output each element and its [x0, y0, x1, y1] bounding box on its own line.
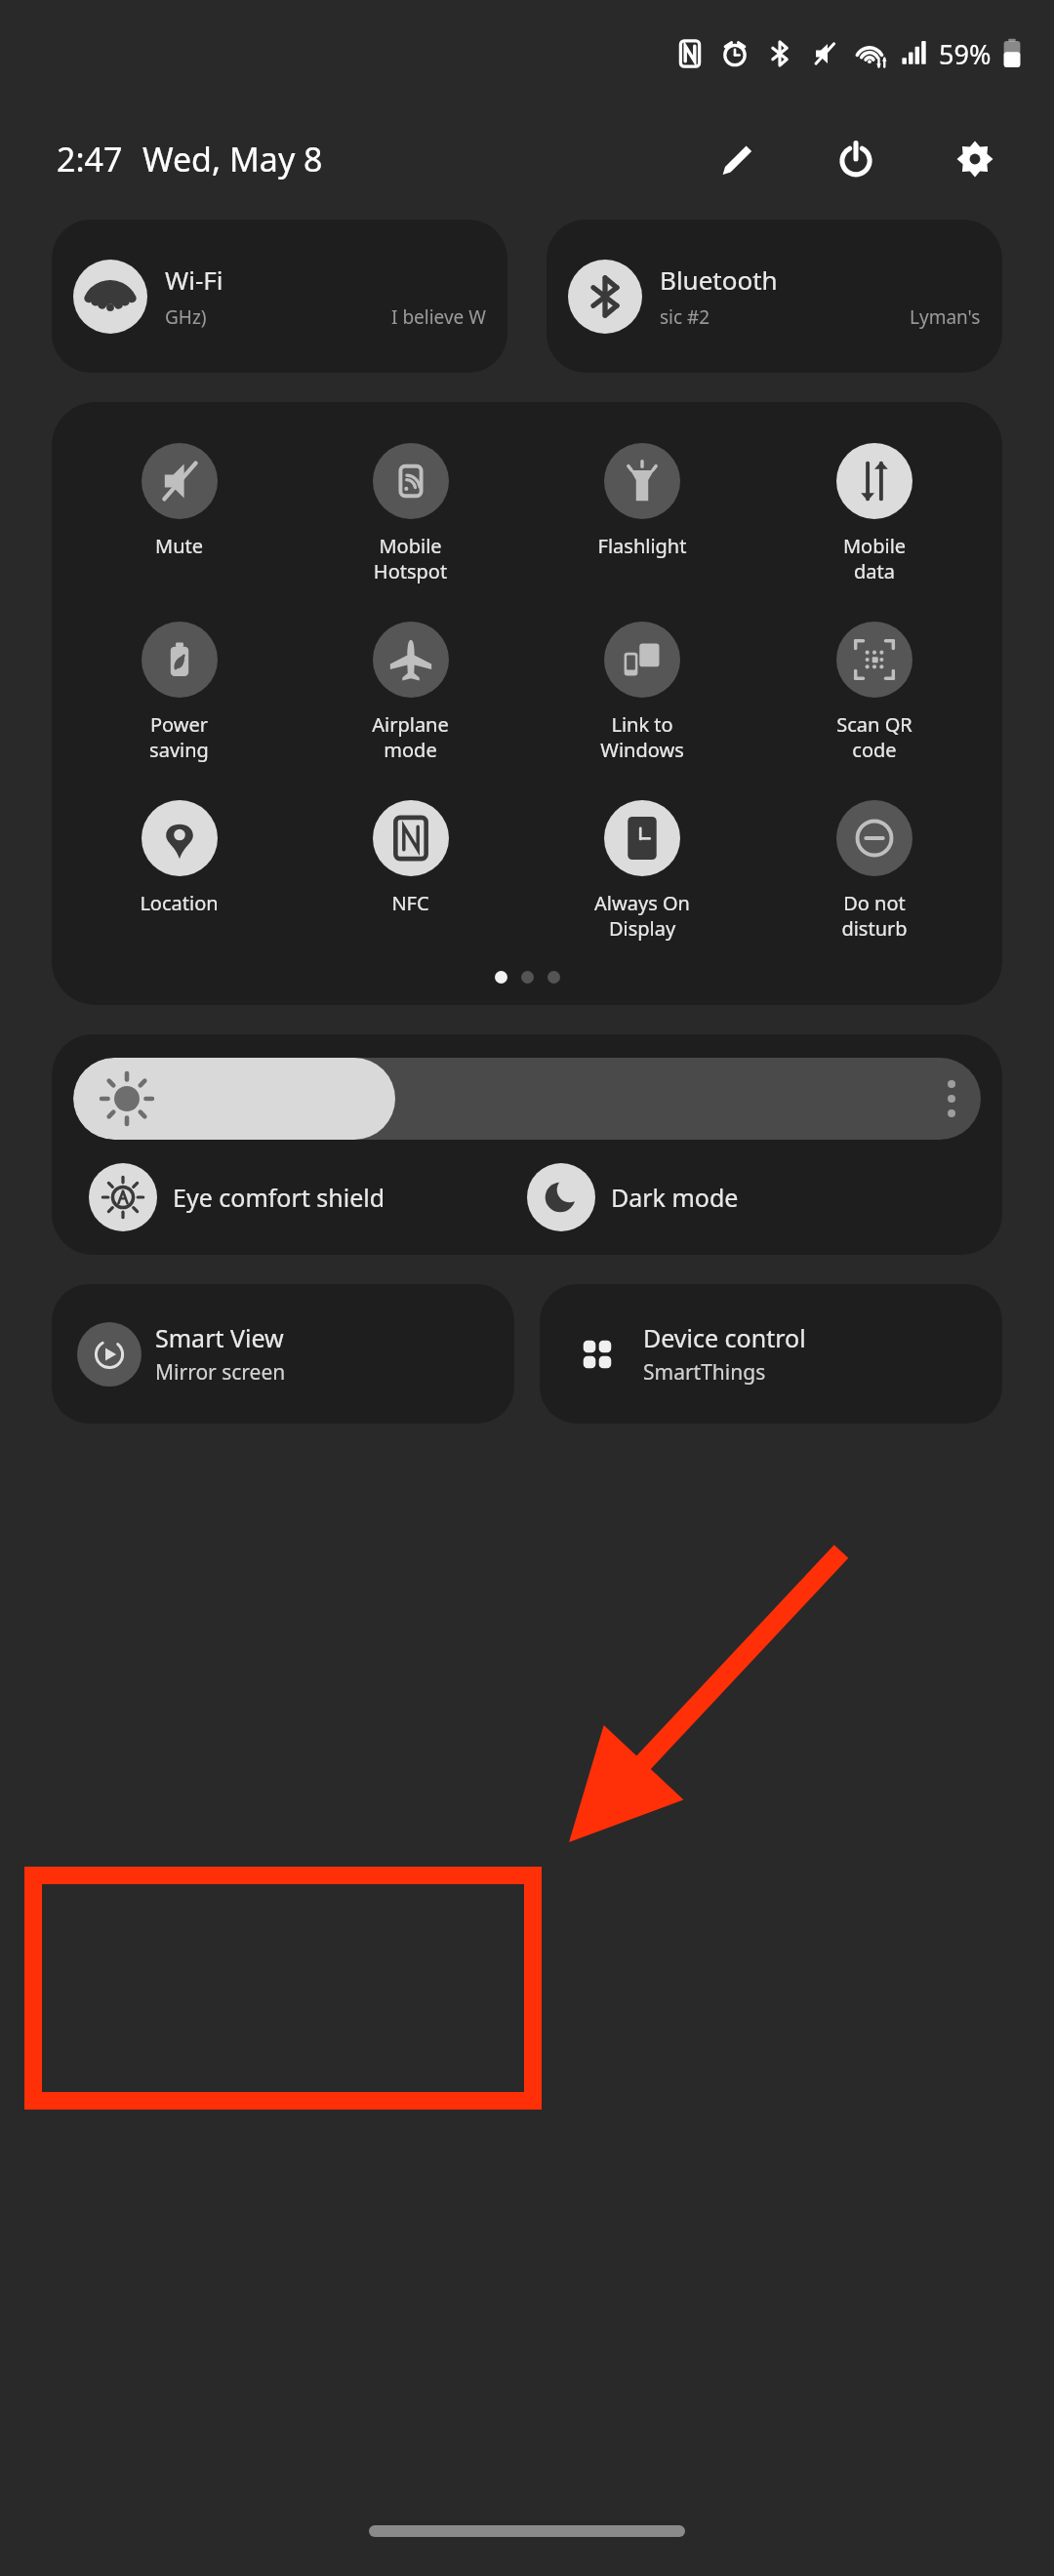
button[interactable]: Power — [822, 125, 890, 193]
button[interactable]: Power saving — [63, 618, 295, 763]
staticText: Link to Windows — [526, 711, 758, 763]
staticText: Device control — [643, 1321, 806, 1354]
staticText: Scan QR code — [758, 711, 991, 763]
button[interactable]: Settings — [941, 125, 1009, 193]
staticText: NFC — [295, 890, 526, 916]
staticText: Always On Display — [526, 890, 758, 942]
button[interactable]: Brightness — [73, 1058, 981, 1140]
other: Wi-Fi — [73, 260, 147, 334]
staticText: Smart View — [155, 1321, 284, 1354]
button[interactable]: Mobile data — [758, 439, 991, 584]
staticText: Mobile Hotspot — [295, 533, 526, 584]
button[interactable]: Scan QR code — [758, 618, 991, 763]
button[interactable]: Always On Display — [526, 796, 758, 942]
other: Bluetooth — [568, 260, 642, 334]
button[interactable]: Mobile Hotspot — [295, 439, 526, 584]
staticText: Flashlight — [526, 533, 758, 559]
button[interactable]: Dark mode — [527, 1163, 1002, 1231]
button[interactable]: Eye comfort shield — [52, 1163, 527, 1231]
staticText: Do not disturb — [758, 890, 991, 942]
button[interactable]: Wi-Fi — [52, 220, 507, 373]
staticText: 59% — [939, 36, 992, 72]
button[interactable]: Flashlight — [526, 439, 758, 559]
button[interactable]: Airplane mode — [295, 618, 526, 763]
button[interactable]: Location — [63, 796, 295, 916]
button[interactable]: Edit — [703, 125, 771, 193]
staticText: Mirror screen — [155, 1358, 286, 1387]
button[interactable]: Bluetooth — [547, 220, 1002, 373]
staticText: Location — [63, 890, 295, 916]
staticText: Wed, May 8 — [142, 137, 323, 181]
staticText: Eye comfort shield — [173, 1181, 385, 1214]
button[interactable]: Device control — [540, 1284, 1002, 1424]
staticText: Dark mode — [611, 1181, 739, 1214]
staticText: Power saving — [63, 711, 295, 763]
staticText: Lyman's — [910, 304, 981, 330]
button[interactable]: Do not disturb — [758, 796, 991, 942]
staticText: Mute — [63, 533, 295, 559]
staticText: SmartThings — [643, 1358, 766, 1387]
staticText: Wi-Fi — [165, 262, 223, 297]
staticText: GHz) — [165, 304, 207, 330]
staticText: sic #2 — [660, 304, 710, 330]
staticText: I believe W — [391, 304, 486, 330]
button[interactable]: Link to Windows — [526, 618, 758, 763]
staticText: Airplane mode — [295, 711, 526, 763]
staticText: Bluetooth — [660, 262, 778, 297]
button[interactable]: Mute — [63, 439, 295, 559]
staticText: 2:47 — [57, 137, 123, 181]
button[interactable]: NFC — [295, 796, 526, 916]
button[interactable]: Smart View — [52, 1284, 514, 1424]
staticText: Mobile data — [758, 533, 991, 584]
